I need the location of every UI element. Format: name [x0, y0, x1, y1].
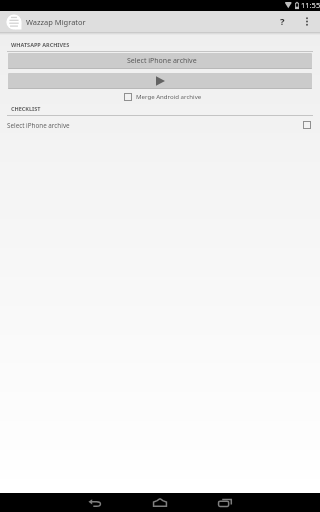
button[interactable]: Select iPhone archive	[0, 118, 320, 132]
button[interactable]: Back	[73, 493, 117, 512]
staticText: WHATSAPP ARCHIVES	[11, 41, 70, 48]
staticText: Merge Android archive	[136, 92, 202, 100]
staticText: Select iPhone archive	[127, 56, 197, 66]
staticText: CHECKLIST	[11, 105, 41, 112]
button[interactable]: Start migration	[8, 73, 312, 89]
button[interactable]: Navigate up	[3, 11, 25, 32]
button[interactable]: Recent apps	[203, 493, 247, 512]
staticText: 11:55	[301, 0, 320, 10]
staticText: Wazzap Migrator	[26, 17, 86, 27]
button[interactable]: Home	[138, 493, 182, 512]
button[interactable]: Merge Android archive	[122, 92, 204, 102]
staticText: Select iPhone archive	[7, 121, 70, 130]
button[interactable]: Select iPhone archive	[8, 53, 312, 69]
staticText: ?	[280, 15, 285, 28]
button[interactable]: More options	[295, 11, 319, 32]
button[interactable]: Help	[271, 11, 295, 32]
